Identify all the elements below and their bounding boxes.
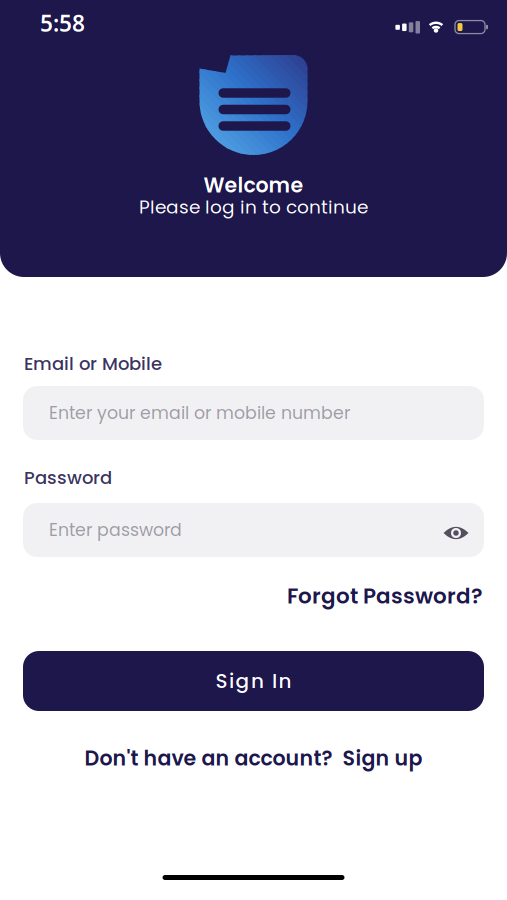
- staticText: Forgot Password?: [287, 581, 483, 611]
- staticText: Enter your email or mobile number: [49, 401, 350, 425]
- button[interactable]: Sign up: [342, 744, 422, 773]
- staticText: 5:58: [40, 8, 85, 38]
- button[interactable]: Enter your email or mobile number: [23, 386, 484, 440]
- staticText: Sign up: [342, 744, 422, 773]
- button[interactable]: Enter password: [23, 503, 484, 557]
- button[interactable]: Forgot Password?: [287, 581, 483, 611]
- staticText: Enter password: [49, 518, 182, 542]
- button[interactable]: Show password: [434, 511, 478, 555]
- staticText: Password: [24, 465, 112, 490]
- staticText: Email or Mobile: [24, 351, 162, 376]
- staticText: Sign In: [215, 667, 291, 695]
- staticText: Welcome: [203, 171, 303, 200]
- button[interactable]: Sign In: [23, 651, 484, 711]
- staticText: Please log in to continue: [139, 194, 368, 220]
- staticText: Don't have an account?: [84, 744, 332, 773]
